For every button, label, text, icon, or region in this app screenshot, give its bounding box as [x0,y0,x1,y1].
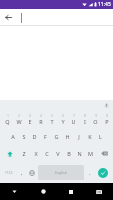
button[interactable]: . [85,163,94,182]
button[interactable]: Switch keyboard [85,183,113,200]
staticText: L [99,133,102,140]
staticText: V [56,150,60,157]
staticText: English [55,170,67,175]
staticText: R [39,118,43,125]
button[interactable]: S [18,128,29,145]
button[interactable]: B [63,145,74,162]
button[interactable]: D [29,128,40,145]
button[interactable]: C [41,145,52,162]
button[interactable]: Voice input [102,101,111,110]
staticText: U [71,118,76,125]
button[interactable]: 2 [13,111,24,128]
staticText: 7 [73,114,75,118]
button[interactable]: 6 [57,111,68,128]
button[interactable]: Recent apps [57,183,85,200]
button[interactable]: Shift [2,146,17,161]
button[interactable]: 8 [79,111,90,128]
staticText: , [21,169,23,177]
staticText: Q [5,118,10,125]
staticText: 5 [51,114,53,118]
staticText: H [65,133,70,140]
button[interactable]: Backspace [97,146,111,161]
staticText: O [93,118,98,125]
staticText: . [89,169,91,177]
button[interactable]: Back [2,11,15,24]
staticText: X [34,150,38,157]
button[interactable]: 7 [68,111,79,128]
staticText: ?123 [5,170,13,175]
staticText: 11:45 [98,1,111,8]
button[interactable]: H [62,128,73,145]
staticText: T [50,118,54,125]
staticText: D [32,133,37,140]
staticText: 1 [7,114,9,118]
button[interactable]: Change language [26,163,37,182]
button[interactable]: English [38,165,84,180]
staticText: S [22,133,26,140]
staticText: Y [61,118,65,125]
button[interactable]: K [84,128,95,145]
staticText: F [44,133,47,140]
staticText: M [88,150,93,157]
staticText: I [84,118,86,125]
button[interactable]: L [95,128,106,145]
button[interactable]: 3 [24,111,35,128]
staticText: E [28,118,32,125]
button[interactable]: V [52,145,63,162]
button[interactable]: 0 [101,111,112,128]
staticText: 6 [62,114,64,118]
button[interactable]: M [85,145,96,162]
staticText: 3 [29,114,31,118]
staticText: 8 [84,114,86,118]
staticText: C [45,150,49,157]
button[interactable]: J [73,128,84,145]
button[interactable]: 5 [46,111,57,128]
button[interactable]: A [7,128,18,145]
button[interactable]: N [74,145,85,162]
button[interactable]: F [40,128,51,145]
staticText: 4 [40,114,42,118]
staticText: 9 [95,114,97,118]
button[interactable]: , [17,163,26,182]
staticText: P [105,118,109,125]
button[interactable]: G [51,128,62,145]
staticText: B [67,150,71,157]
button[interactable]: Enter [94,163,112,182]
button[interactable]: Z [18,145,30,162]
staticText: K [88,133,92,140]
staticText: W [16,118,22,125]
staticText: G [54,133,59,140]
staticText: N [77,150,82,157]
button[interactable]: ?123 [1,163,17,182]
button[interactable]: Hide keyboard [0,183,29,200]
button[interactable]: Home [29,183,57,200]
button[interactable]: 1 [1,111,13,128]
button[interactable]: X [30,145,41,162]
button[interactable]: 4 [35,111,46,128]
staticText: 2 [18,114,20,118]
staticText: J [78,133,80,140]
staticText: A [11,133,15,140]
button[interactable]: 9 [90,111,101,128]
staticText: Z [22,150,26,157]
staticText: 0 [106,114,108,118]
